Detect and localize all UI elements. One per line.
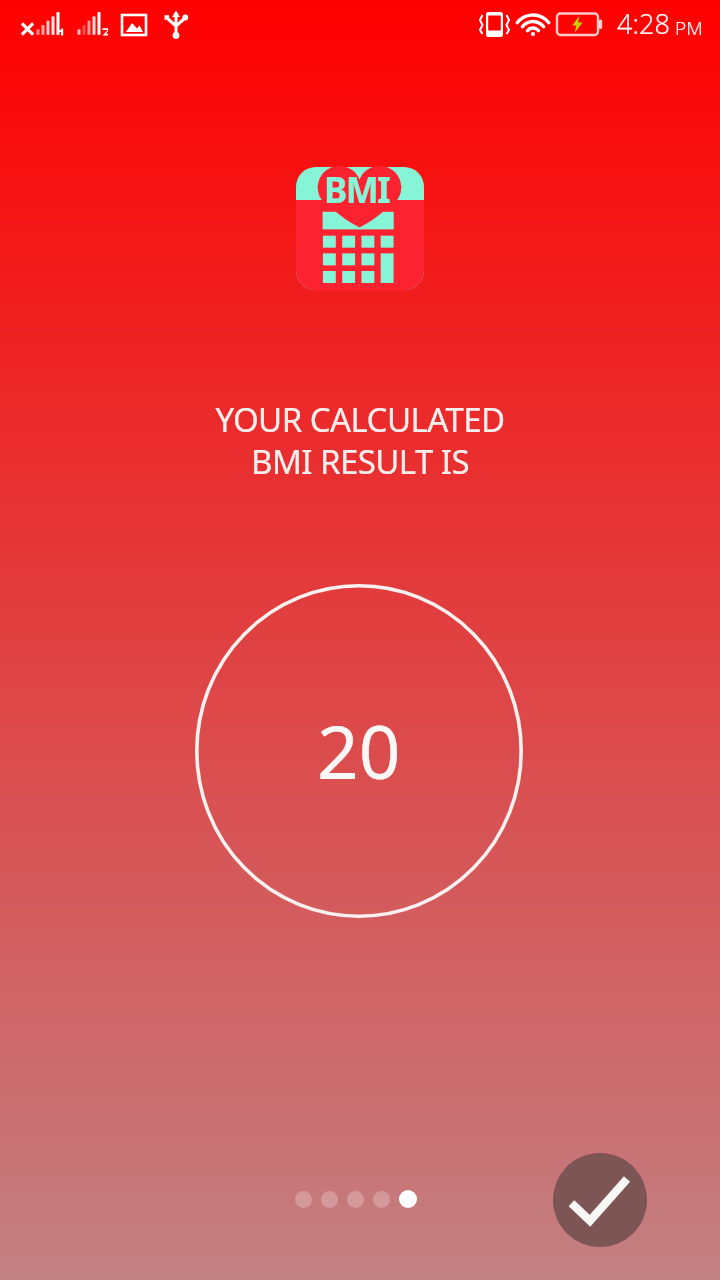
staticText: BMI <box>324 166 390 214</box>
staticText: 4:28 <box>617 5 670 42</box>
button[interactable]: Confirm <box>553 1153 647 1247</box>
button[interactable]: Page 5 <box>399 1190 417 1208</box>
button[interactable]: Page 4 <box>373 1191 390 1208</box>
button[interactable]: Page 1 <box>295 1191 312 1208</box>
staticText: PM <box>675 15 703 41</box>
button[interactable]: Page 3 <box>347 1191 364 1208</box>
button[interactable]: Page 2 <box>321 1191 338 1208</box>
staticText: YOUR CALCULATED BMI RESULT IS <box>215 397 505 484</box>
staticText: 20 <box>317 701 401 800</box>
